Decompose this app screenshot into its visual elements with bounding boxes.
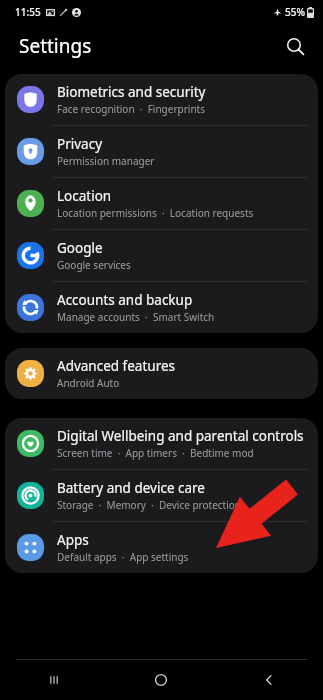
button[interactable]: Privacy — [5, 126, 318, 177]
staticText: Google — [57, 239, 103, 257]
staticText: Biometrics and security — [57, 83, 206, 101]
staticText: Location permissions · Location requests — [57, 206, 254, 220]
staticText: Android Auto — [57, 376, 120, 390]
button[interactable]: Apps — [5, 522, 318, 573]
staticText: Storage · Memory · Device protection — [57, 498, 242, 512]
staticText: Permission manager — [57, 154, 155, 168]
button[interactable]: Advanced features — [5, 348, 318, 399]
staticText: Google services — [57, 258, 131, 272]
button[interactable]: Biometrics and security — [5, 74, 318, 125]
staticText: Manage accounts · Smart Switch — [57, 310, 215, 324]
button[interactable]: Recent apps — [0, 660, 107, 700]
staticText: Settings — [19, 33, 92, 59]
button[interactable]: Home — [107, 660, 215, 700]
staticText: Privacy — [57, 135, 103, 153]
staticText: Location — [57, 187, 112, 205]
staticText: 11:55 — [15, 5, 41, 19]
staticText: Accounts and backup — [57, 291, 193, 309]
button[interactable]: Back — [215, 660, 323, 700]
staticText: Screen time · App timers · Bedtime mod — [57, 446, 254, 460]
staticText: 55% — [285, 5, 305, 19]
staticText: Digital Wellbeing and parental controls — [57, 427, 304, 445]
staticText: Advanced features — [57, 357, 176, 375]
staticText: Battery and device care — [57, 479, 205, 497]
staticText: Face recognition · Fingerprints — [57, 102, 205, 116]
button[interactable]: Battery and device care — [5, 470, 318, 521]
staticText: Apps — [57, 531, 89, 549]
button[interactable]: Accounts and backup — [5, 282, 318, 333]
button[interactable]: Google — [5, 230, 318, 281]
button[interactable]: Digital Wellbeing and parental controls — [5, 418, 318, 469]
button[interactable]: Search — [277, 28, 313, 64]
button[interactable]: Location — [5, 178, 318, 229]
staticText: Default apps · App settings — [57, 550, 189, 564]
